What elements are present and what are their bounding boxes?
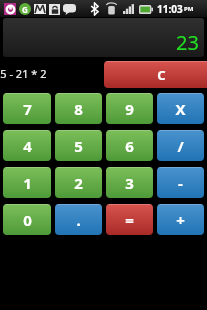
button[interactable]: 23 bbox=[3, 18, 204, 57]
button[interactable]: Add bbox=[157, 204, 204, 235]
button[interactable]: Divide bbox=[157, 130, 204, 161]
staticText: 2 bbox=[74, 173, 83, 193]
staticText: C bbox=[157, 66, 166, 84]
button[interactable]: Equals bbox=[106, 204, 153, 235]
staticText: 1 bbox=[23, 173, 32, 193]
button[interactable]: 4 bbox=[3, 130, 51, 161]
button[interactable]: Multiply bbox=[157, 93, 204, 124]
staticText: PM bbox=[184, 5, 194, 13]
button[interactable]: C bbox=[104, 61, 207, 88]
button[interactable]: 8 bbox=[55, 93, 102, 124]
staticText: 23 bbox=[176, 29, 199, 56]
staticText: 0 bbox=[23, 210, 32, 230]
staticText: 3 bbox=[125, 173, 134, 193]
button[interactable]: 3 bbox=[106, 167, 153, 198]
button[interactable]: 5 bbox=[55, 130, 102, 161]
staticText: 11:03 bbox=[157, 2, 183, 16]
button[interactable]: Subtract bbox=[157, 167, 204, 198]
staticText: 6 bbox=[125, 136, 134, 156]
button[interactable]: 9 bbox=[106, 93, 153, 124]
staticText: 8 bbox=[74, 99, 83, 119]
staticText: 5 bbox=[74, 136, 83, 156]
button[interactable]: 6 bbox=[106, 130, 153, 161]
staticText: 9 bbox=[125, 99, 134, 119]
button[interactable]: 2 bbox=[55, 167, 102, 198]
button[interactable]: 1 bbox=[3, 167, 51, 198]
staticText: 4 bbox=[23, 136, 32, 156]
staticText: - bbox=[178, 173, 183, 193]
staticText: 65 - 21 * 2 bbox=[0, 66, 47, 81]
staticText: + bbox=[176, 210, 185, 230]
staticText: G bbox=[22, 4, 28, 15]
staticText: . bbox=[76, 210, 81, 230]
button[interactable]: Decimal point bbox=[55, 204, 102, 235]
staticText: X bbox=[175, 99, 186, 119]
staticText: 7 bbox=[23, 99, 32, 119]
staticText: / bbox=[177, 136, 184, 156]
button[interactable]: 7 bbox=[3, 93, 51, 124]
staticText: = bbox=[125, 210, 134, 230]
button[interactable]: 0 bbox=[3, 204, 51, 235]
